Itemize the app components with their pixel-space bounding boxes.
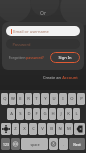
button[interactable]: F	[33, 108, 40, 120]
staticText: N	[58, 126, 62, 132]
staticText: Or	[40, 10, 46, 17]
button[interactable]: C	[29, 123, 37, 135]
button[interactable]: Forgotten	[6, 54, 46, 61]
staticText: Z	[14, 126, 17, 132]
staticText: J	[60, 111, 62, 117]
button[interactable]: H	[49, 108, 56, 120]
button[interactable]: Backspace	[74, 123, 85, 135]
staticText: password?	[26, 55, 44, 60]
staticText: E	[19, 96, 22, 102]
staticText: G	[43, 111, 47, 117]
button[interactable]: K	[65, 108, 72, 120]
button[interactable]: M	[65, 123, 73, 135]
staticText: Sign In	[58, 55, 72, 60]
staticText: space	[30, 142, 40, 147]
staticText: T	[35, 96, 38, 102]
button[interactable]: T	[33, 93, 40, 105]
button[interactable]: E	[17, 93, 24, 105]
button[interactable]: Sign In	[50, 52, 80, 63]
staticText: Create an	[42, 75, 62, 80]
staticText: S	[19, 111, 22, 117]
button[interactable]: Emoji	[49, 138, 58, 150]
button[interactable]: D	[25, 108, 32, 120]
staticText: P	[80, 96, 83, 102]
staticText: M	[67, 126, 71, 132]
staticText: Email or username	[13, 29, 49, 34]
button[interactable]: 123	[1, 138, 10, 150]
staticText: L	[75, 111, 78, 117]
button[interactable]: G	[41, 108, 48, 120]
staticText: K	[67, 111, 70, 117]
staticText: F	[35, 111, 38, 117]
staticText: Account	[62, 75, 78, 80]
button[interactable]: Change keyboard language	[11, 138, 20, 150]
staticText: V	[41, 126, 44, 132]
button[interactable]: Email or username	[6, 26, 80, 36]
staticText: 123	[3, 142, 9, 147]
staticText: D	[27, 111, 31, 117]
staticText: Q	[3, 96, 7, 102]
staticText: Forgotten	[8, 55, 26, 60]
button[interactable]: Q	[1, 93, 8, 105]
staticText: U	[52, 96, 56, 102]
button[interactable]: U	[50, 93, 58, 105]
button[interactable]: Password	[6, 39, 80, 49]
button[interactable]: V	[38, 123, 46, 135]
staticText: O	[70, 96, 74, 102]
staticText: W	[11, 96, 15, 102]
button[interactable]: N	[56, 123, 64, 135]
button[interactable]: L	[73, 108, 80, 120]
button[interactable]: J	[57, 108, 64, 120]
button[interactable]: .	[59, 138, 68, 150]
button[interactable]: R	[25, 93, 32, 105]
button[interactable]: A	[7, 108, 15, 120]
staticText: Password	[12, 42, 31, 47]
staticText: X	[23, 126, 26, 132]
staticText: R	[27, 96, 30, 102]
button[interactable]: P	[77, 93, 85, 105]
button[interactable]: W	[9, 93, 16, 105]
button[interactable]: space	[21, 138, 48, 150]
button[interactable]: I	[59, 93, 67, 105]
staticText: Next	[73, 142, 81, 147]
staticText: .	[63, 142, 64, 147]
button[interactable]: B	[47, 123, 55, 135]
button[interactable]: Next	[69, 138, 85, 150]
button[interactable]: Shift	[1, 123, 11, 135]
staticText: B	[50, 126, 53, 132]
staticText: Y	[44, 96, 47, 102]
button[interactable]: S	[16, 108, 24, 120]
button[interactable]: O	[68, 93, 76, 105]
button[interactable]: Z	[12, 123, 19, 135]
button[interactable]: Y	[41, 93, 49, 105]
staticText: H	[51, 111, 55, 117]
staticText: I	[62, 96, 64, 102]
staticText: C	[32, 126, 35, 132]
button[interactable]: X	[20, 123, 28, 135]
staticText: A	[10, 111, 13, 117]
button[interactable]: Create an	[40, 74, 80, 81]
